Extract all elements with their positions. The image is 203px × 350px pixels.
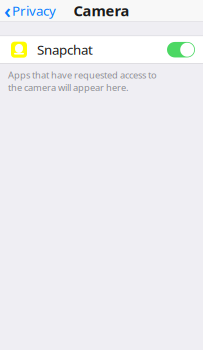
staticText: Apps that have requested access to the c… (8, 69, 157, 94)
staticText: Privacy (12, 2, 56, 19)
staticText: ‹ (4, 0, 11, 24)
button[interactable]: Snapchat (0, 36, 203, 63)
staticText: Snapchat (37, 41, 93, 58)
staticText: Camera (73, 1, 129, 20)
button[interactable]: ‹ (0, 0, 62, 27)
